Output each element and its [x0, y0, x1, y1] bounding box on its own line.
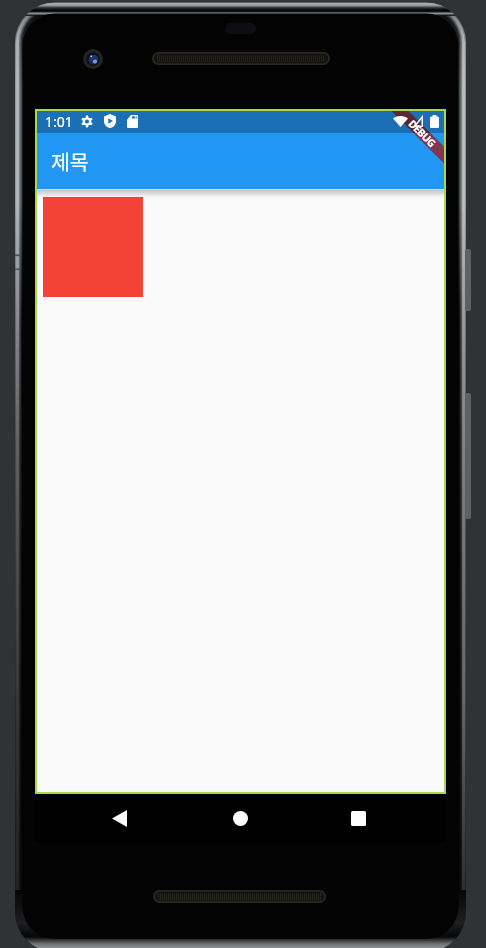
button[interactable]: Home — [212, 794, 268, 842]
button[interactable]: Back — [91, 794, 147, 842]
button[interactable]: Recent apps — [330, 794, 386, 842]
staticText: DEBUG — [406, 117, 439, 150]
staticText: 제목 — [51, 146, 89, 176]
staticText: 1:01 — [45, 112, 73, 131]
